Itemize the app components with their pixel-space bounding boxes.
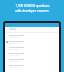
button[interactable] [6, 39, 58, 45]
staticText: with developer answers [15, 9, 49, 13]
button[interactable] [6, 57, 58, 63]
button[interactable] [6, 45, 58, 51]
button[interactable] [6, 33, 58, 39]
button[interactable] [6, 63, 58, 69]
staticText: 1,500 DESIGN questions [15, 4, 50, 8]
button[interactable] [6, 51, 58, 57]
